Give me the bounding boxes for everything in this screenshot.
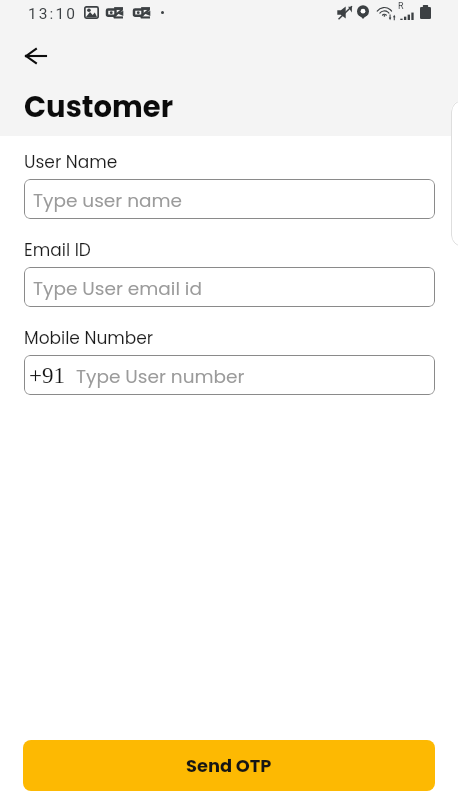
staticText: R [398, 1, 404, 12]
staticText: Type User email id [33, 276, 202, 302]
staticText: Customer [24, 87, 174, 128]
button[interactable]: Type User email id [24, 267, 435, 307]
staticText: Type user name [33, 188, 183, 214]
button[interactable]: +91 [24, 355, 435, 395]
staticText: User Name [24, 150, 118, 174]
staticText: Send OTP [186, 753, 272, 778]
staticText: Type User number [76, 364, 245, 390]
staticText: 13:10 [28, 5, 78, 23]
staticText: +91 [29, 363, 65, 388]
button[interactable]: Type user name [24, 179, 435, 219]
button[interactable]: Back [17, 38, 53, 74]
staticText: Email ID [24, 238, 91, 262]
button[interactable]: Send OTP [23, 740, 435, 791]
staticText: Mobile Number [24, 326, 154, 350]
